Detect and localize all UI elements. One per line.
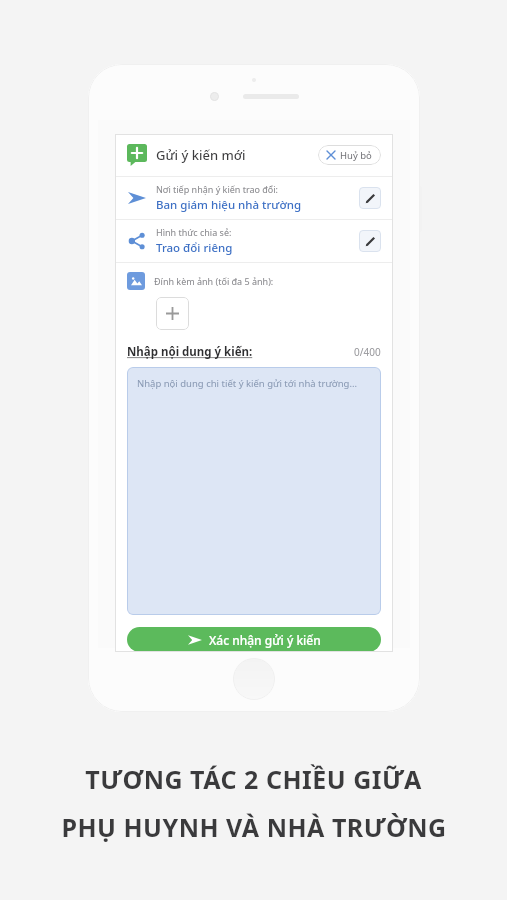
staticText: Ban giám hiệu nhà trường bbox=[156, 197, 302, 213]
staticText: Xác nhận gửi ý kiến bbox=[209, 632, 321, 648]
button[interactable]: Thêm ảnh bbox=[156, 297, 189, 330]
button[interactable]: Chỉnh sửa bbox=[359, 187, 381, 209]
staticText: PHỤ HUYNH VÀ NHÀ TRƯỜNG bbox=[61, 810, 447, 844]
button[interactable]: Huỷ bỏ bbox=[327, 145, 372, 165]
staticText: Huỷ bỏ bbox=[340, 149, 372, 162]
staticText: Đính kèm ảnh (tối đa 5 ảnh): bbox=[154, 275, 274, 287]
staticText: Nhập nội dung chi tiết ý kiến gửi tới nh… bbox=[137, 377, 358, 390]
button[interactable]: Xác nhận gửi ý kiến bbox=[127, 627, 381, 652]
staticText: Gửi ý kiến mới bbox=[156, 146, 246, 164]
staticText: Trao đổi riêng bbox=[156, 240, 233, 256]
staticText: Nhập nội dung ý kiến: bbox=[127, 344, 253, 360]
staticText: Hình thức chia sẻ: bbox=[156, 226, 232, 238]
button[interactable]: Nhập nội dung chi tiết ý kiến gửi tới nh… bbox=[127, 367, 381, 615]
button[interactable]: Chỉnh sửa bbox=[359, 230, 381, 252]
staticText: 0/400 bbox=[354, 345, 381, 359]
staticText: Nơi tiếp nhận ý kiến trao đổi: bbox=[156, 183, 279, 195]
staticText: TƯƠNG TÁC 2 CHIỀU GIỮA bbox=[85, 762, 422, 796]
